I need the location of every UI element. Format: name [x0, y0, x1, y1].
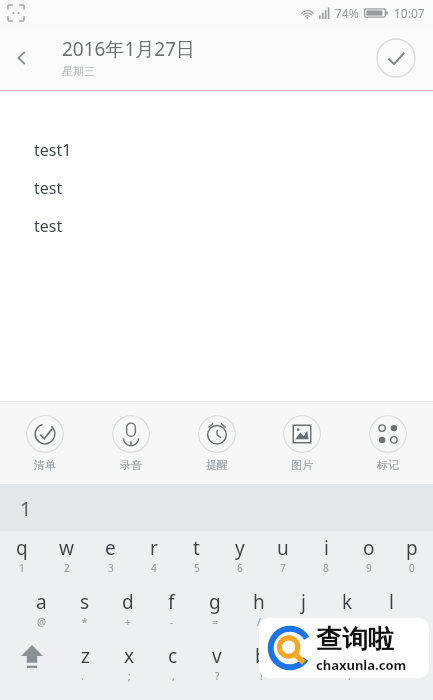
button[interactable]: f [149, 589, 193, 633]
staticText: / [257, 615, 261, 629]
button[interactable]: 图片 [271, 415, 333, 472]
button[interactable]: p [390, 535, 433, 579]
staticText: @ [37, 615, 46, 629]
staticText: l [389, 589, 394, 615]
staticText: 录音 [120, 458, 142, 472]
staticText: 2016年1月27日 [62, 36, 196, 62]
staticText: 1 [19, 561, 25, 575]
staticText: s [80, 589, 90, 615]
staticText: 1 [20, 495, 32, 522]
button[interactable]: b [239, 643, 283, 687]
staticText: t [193, 535, 200, 561]
button[interactable]: 录音 [100, 415, 162, 472]
button[interactable]: x [107, 643, 151, 687]
button[interactable]: r [132, 535, 175, 579]
staticText: test [34, 177, 63, 199]
staticText: a [36, 589, 47, 615]
staticText: : [302, 615, 305, 629]
staticText: o [363, 535, 375, 561]
staticText: 7 [280, 561, 286, 575]
staticText: ' [390, 615, 393, 629]
staticText: 8 [323, 561, 329, 575]
staticText: w [59, 535, 74, 561]
staticText: 星期三 [62, 64, 95, 78]
staticText: z [81, 643, 90, 669]
staticText: ; [128, 669, 131, 683]
staticText: u [277, 535, 289, 561]
staticText: , [172, 669, 175, 683]
button[interactable]: 1 [0, 485, 433, 531]
staticText: ~ [302, 669, 308, 683]
staticText: b [255, 643, 267, 669]
button[interactable]: k [325, 589, 369, 633]
staticText: test [34, 215, 63, 237]
button[interactable]: e [88, 535, 132, 579]
button[interactable]: h [237, 589, 281, 633]
button[interactable]: a [20, 589, 63, 633]
staticText: n [299, 643, 311, 669]
staticText: k [342, 589, 353, 615]
button[interactable]: u [261, 535, 304, 579]
staticText: chaxunla.com [316, 656, 407, 674]
button[interactable]: l [369, 589, 413, 633]
button[interactable]: m [327, 643, 371, 687]
staticText: ! [260, 669, 263, 683]
staticText: 5 [194, 561, 200, 575]
staticText: test1 [34, 139, 72, 161]
staticText: v [212, 643, 222, 669]
button[interactable]: 清单 [14, 415, 76, 472]
button[interactable]: s [63, 589, 106, 633]
button[interactable]: v [195, 643, 239, 687]
staticText: " [345, 615, 350, 629]
button[interactable]: Done [376, 38, 416, 78]
staticText: 清单 [34, 458, 56, 472]
button[interactable]: n [283, 643, 327, 687]
staticText: r [150, 535, 158, 561]
button[interactable]: o [347, 535, 390, 579]
button[interactable]: c [151, 643, 195, 687]
staticText: 9 [366, 561, 372, 575]
staticText: i [324, 535, 329, 561]
staticText: ? [215, 669, 220, 683]
button[interactable]: Backspace [371, 643, 433, 687]
staticText: q [16, 535, 28, 561]
button[interactable]: 标记 [357, 415, 419, 472]
button[interactable]: y [218, 535, 261, 579]
staticText: g [209, 589, 221, 615]
button[interactable]: w [44, 535, 88, 579]
staticText: 10:07 [394, 5, 425, 21]
staticText: 3 [108, 561, 114, 575]
button[interactable]: g [193, 589, 237, 633]
button[interactable]: d [106, 589, 149, 633]
staticText: - [170, 615, 174, 629]
button[interactable]: i [304, 535, 347, 579]
staticText: d [122, 589, 134, 615]
button[interactable]: test1 [34, 139, 433, 401]
staticText: 提醒 [206, 458, 228, 472]
staticText: 4 [151, 561, 157, 575]
staticText: 查询啦 [316, 623, 394, 656]
staticText: e [105, 535, 116, 561]
button[interactable]: 提醒 [186, 415, 248, 472]
staticText: x [124, 643, 135, 669]
staticText: h [253, 589, 265, 615]
button[interactable]: Shift [0, 643, 63, 687]
staticText: m [340, 643, 358, 669]
button[interactable]: t [175, 535, 218, 579]
button[interactable]: z [63, 643, 107, 687]
staticText: 6 [237, 561, 243, 575]
staticText: 、 [80, 669, 90, 682]
staticText: 图片 [291, 458, 313, 472]
staticText: j [301, 589, 306, 615]
button[interactable]: q [0, 535, 44, 579]
staticText: 74% [335, 5, 359, 21]
button[interactable]: j [281, 589, 325, 633]
staticText: = [212, 615, 218, 629]
staticText: y [235, 535, 245, 561]
staticText: * [82, 615, 88, 629]
staticText: 标记 [377, 458, 399, 472]
button[interactable]: Back [0, 36, 44, 80]
staticText: 0 [409, 561, 415, 575]
staticText: + [125, 615, 131, 629]
staticText: f [168, 589, 175, 615]
